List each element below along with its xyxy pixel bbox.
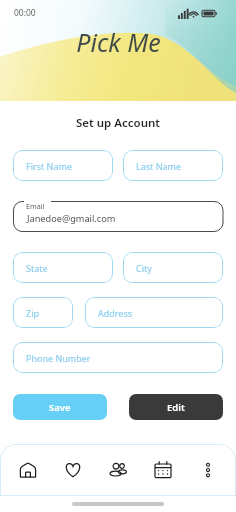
staticText: State xyxy=(26,262,48,274)
button[interactable]: Edit xyxy=(129,394,223,420)
staticText: Last Name xyxy=(136,160,182,172)
staticText: Set up Account xyxy=(0,115,236,131)
staticText: City xyxy=(136,262,152,274)
button[interactable]: Zip xyxy=(13,297,73,328)
staticText: Edit xyxy=(167,401,185,414)
staticText: Janedoe@gmail.com xyxy=(27,212,116,225)
button[interactable]: Home xyxy=(11,453,45,487)
staticText: Pick Me xyxy=(76,25,161,59)
staticText: Phone Number xyxy=(26,352,91,364)
staticText: 00:00 xyxy=(14,7,36,19)
button[interactable]: First Name xyxy=(13,150,113,181)
staticText: Save xyxy=(49,401,71,414)
button[interactable]: State xyxy=(13,252,113,283)
button[interactable]: Last Name xyxy=(123,150,223,181)
button[interactable]: Calendar xyxy=(146,453,180,487)
button[interactable]: Save xyxy=(13,394,107,420)
staticText: First Name xyxy=(26,160,72,172)
button[interactable]: Favorites xyxy=(56,453,90,487)
staticText: Address xyxy=(98,307,133,319)
staticText: Zip xyxy=(26,307,40,319)
button[interactable]: Phone Number xyxy=(13,342,223,373)
button[interactable] xyxy=(13,201,223,232)
staticText: Email xyxy=(26,201,45,211)
button[interactable]: People xyxy=(101,453,135,487)
button[interactable]: City xyxy=(123,252,223,283)
button[interactable]: More options xyxy=(191,453,225,487)
button[interactable]: Address xyxy=(85,297,223,328)
